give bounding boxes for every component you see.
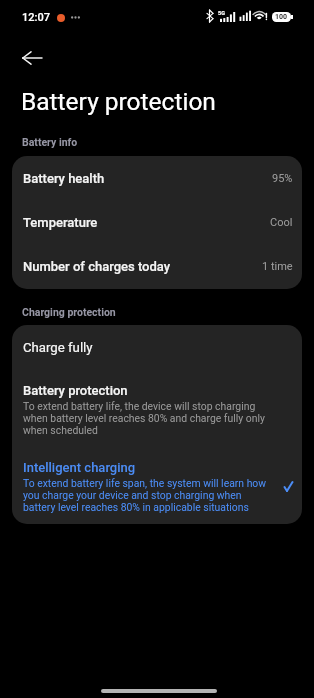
- staticText: Cool: [270, 216, 293, 229]
- button[interactable]: Back: [10, 36, 53, 79]
- staticText: Battery info: [22, 136, 78, 148]
- staticText: Charging protection: [22, 306, 116, 318]
- staticText: Temperature: [23, 215, 98, 230]
- staticText: Battery protection: [23, 383, 128, 398]
- button[interactable]: Number of charges today: [12, 244, 302, 288]
- staticText: 5G: [218, 10, 225, 16]
- staticText: To extend battery life, the device will …: [23, 400, 265, 436]
- button[interactable]: Temperature: [12, 200, 302, 244]
- button[interactable]: Battery health: [12, 156, 302, 200]
- staticText: Intelligent charging: [23, 460, 136, 475]
- staticText: Battery protection: [21, 87, 216, 116]
- staticText: 100: [275, 13, 288, 21]
- button[interactable]: Charge fully: [23, 336, 302, 368]
- staticText: Charge fully: [23, 340, 93, 355]
- staticText: 95%: [272, 172, 293, 185]
- staticText: 1 time: [262, 260, 293, 273]
- button[interactable]: Battery protection: [12, 378, 302, 442]
- staticText: To extend battery life span, the system …: [23, 477, 267, 513]
- staticText: 12:07: [22, 11, 50, 24]
- staticText: Number of charges today: [23, 259, 171, 274]
- button[interactable]: Intelligent charging: [12, 455, 302, 519]
- staticText: Battery health: [23, 171, 105, 186]
